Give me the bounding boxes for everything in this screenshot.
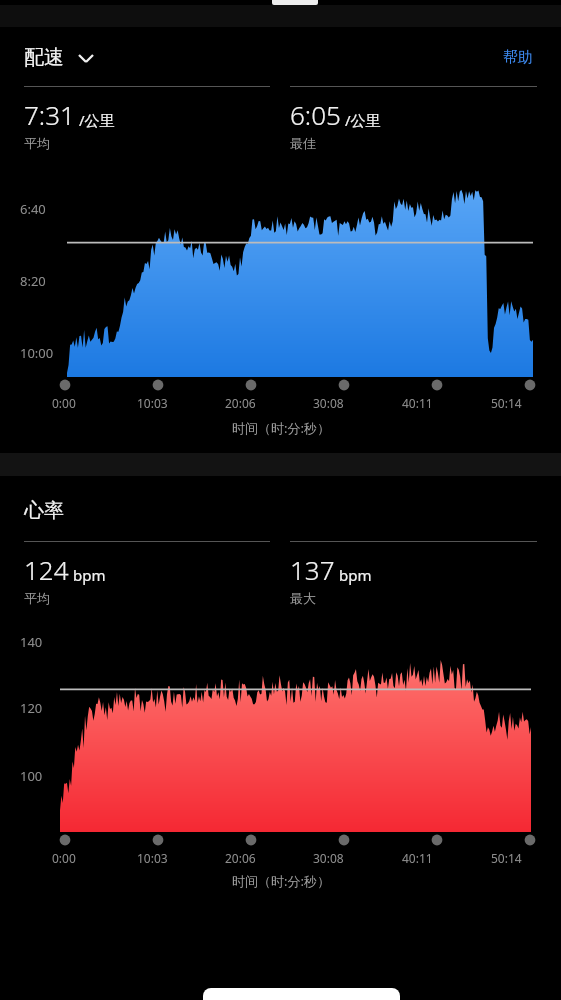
staticText: 140 xyxy=(20,633,43,651)
staticText: /公里 xyxy=(345,110,381,130)
staticText: 40:11 xyxy=(402,850,433,866)
staticText: 心率 xyxy=(24,498,64,523)
staticText: 6:05 xyxy=(290,97,341,132)
staticText: 时间（时:分:秒） xyxy=(232,872,330,890)
staticText: 120 xyxy=(20,699,43,717)
staticText: 0:00 xyxy=(52,850,76,866)
staticText: 平均 xyxy=(24,590,50,606)
staticText: 8:20 xyxy=(20,272,46,290)
staticText: 30:08 xyxy=(313,395,344,411)
button[interactable]: 配速 xyxy=(24,41,95,74)
staticText: 10:03 xyxy=(137,395,168,411)
staticText: 30:08 xyxy=(313,850,344,866)
staticText: 20:06 xyxy=(225,850,256,866)
staticText: 124 xyxy=(24,552,69,587)
staticText: 137 xyxy=(290,552,335,587)
staticText: 10:00 xyxy=(20,344,54,362)
staticText: 10:03 xyxy=(137,850,168,866)
staticText: bpm xyxy=(339,565,372,585)
staticText: 50:14 xyxy=(491,395,522,411)
staticText: /公里 xyxy=(79,110,115,130)
staticText: 100 xyxy=(20,767,43,785)
staticText: 40:11 xyxy=(402,395,433,411)
staticText: 配速 xyxy=(24,45,64,70)
staticText: 0:00 xyxy=(52,395,76,411)
staticText: 50:14 xyxy=(491,850,522,866)
staticText: 平均 xyxy=(24,135,50,151)
staticText: 20:06 xyxy=(225,395,256,411)
staticText: 最佳 xyxy=(290,135,316,151)
staticText: 最大 xyxy=(290,590,316,606)
staticText: 6:40 xyxy=(20,200,46,218)
button[interactable]: 帮助 xyxy=(499,42,537,73)
staticText: bpm xyxy=(73,565,106,585)
staticText: 7:31 xyxy=(24,97,75,132)
staticText: 时间（时:分:秒） xyxy=(232,419,330,437)
other: Expand pace options xyxy=(77,49,95,67)
staticText: 帮助 xyxy=(503,48,533,67)
